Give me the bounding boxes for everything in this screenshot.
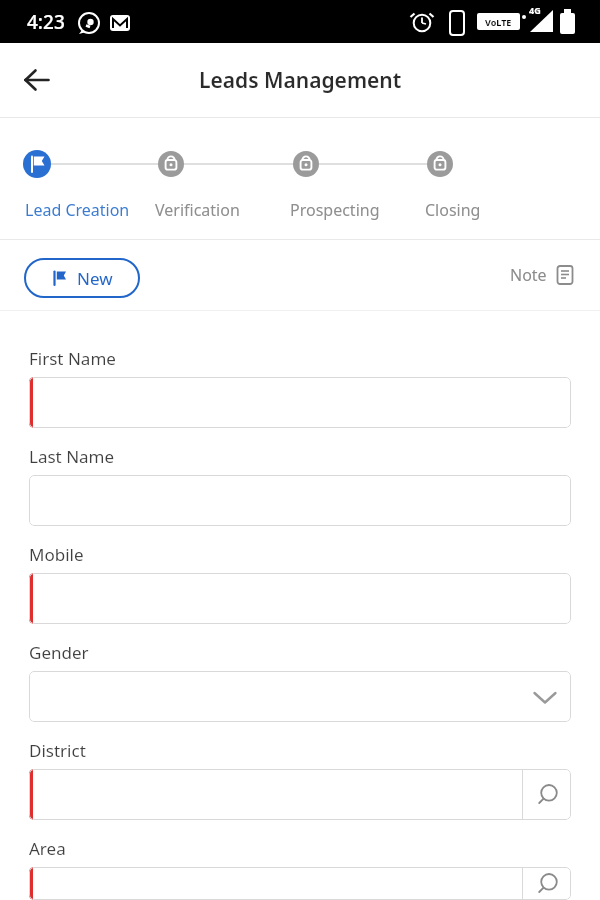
button[interactable] xyxy=(522,867,571,900)
button[interactable] xyxy=(20,63,54,97)
button[interactable] xyxy=(29,671,571,722)
staticText: First Name xyxy=(29,347,116,370)
button[interactable] xyxy=(29,769,571,820)
staticText: 4G xyxy=(529,4,541,16)
button[interactable]: Verification xyxy=(155,199,240,221)
staticText: 4:23 xyxy=(27,9,65,35)
button[interactable] xyxy=(29,573,571,624)
button[interactable] xyxy=(29,377,571,428)
staticText: New xyxy=(77,267,113,290)
button[interactable]: Prospecting xyxy=(290,199,380,221)
staticText: Last Name xyxy=(29,445,115,468)
staticText: Area xyxy=(29,837,66,860)
button[interactable]: New xyxy=(24,258,140,298)
staticText: Note xyxy=(510,264,547,286)
button[interactable] xyxy=(522,769,571,820)
staticText: Gender xyxy=(29,641,89,664)
staticText: Mobile xyxy=(29,543,84,566)
staticText: District xyxy=(29,739,86,762)
button[interactable] xyxy=(29,867,571,900)
staticText: Leads Management xyxy=(199,66,402,95)
staticText: VoLTE xyxy=(485,16,512,28)
button[interactable] xyxy=(29,475,571,526)
button[interactable]: Closing xyxy=(425,199,481,221)
button[interactable]: Note xyxy=(510,264,575,286)
button[interactable]: Lead Creation xyxy=(25,199,130,221)
